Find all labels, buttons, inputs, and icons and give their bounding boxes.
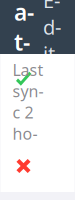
button[interactable]: Edit xyxy=(43,0,61,67)
staticText: Edit xyxy=(43,0,61,67)
staticText: Last sync 2 hours ago xyxy=(12,59,43,187)
button[interactable]: Backup complete xyxy=(0,54,74,106)
button[interactable]: Upload failed xyxy=(0,140,74,192)
button[interactable]: Last sync 2 hours ago xyxy=(0,106,74,140)
staticText: Status xyxy=(14,0,35,117)
